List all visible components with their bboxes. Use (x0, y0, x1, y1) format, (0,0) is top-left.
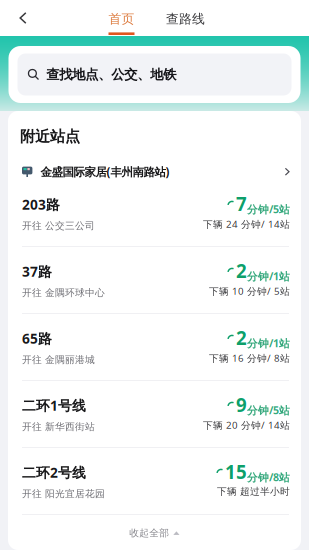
button[interactable]: 203路 (8, 180, 301, 246)
staticText: 下辆 10 分钟/ 5站 (209, 284, 290, 298)
button[interactable]: 首页 (102, 0, 140, 36)
staticText: 203路 (22, 195, 60, 214)
staticText: 7 (236, 191, 247, 216)
staticText: 9 (236, 392, 247, 417)
staticText: 下辆 24 分钟/ 14站 (203, 217, 290, 231)
staticText: 分钟/1站 (247, 269, 290, 283)
staticText: 下辆 16 分钟/ 8站 (209, 351, 290, 365)
staticText: 分钟/8站 (247, 470, 290, 484)
button[interactable]: 37路 (8, 247, 301, 313)
staticText: 查找地点、公交、地铁 (46, 66, 176, 83)
button[interactable]: 收起全部 (8, 515, 301, 550)
button[interactable]: Back (0, 0, 46, 36)
staticText: 二环1号线 (22, 396, 86, 415)
button[interactable]: 金盛国际家居(丰州南路站) (8, 152, 301, 180)
staticText: 2 (236, 258, 247, 283)
staticText: 开往 阳光宜居花园 (22, 488, 105, 500)
staticText: 下辆 20 分钟/ 14站 (203, 418, 290, 432)
staticText: 附近站点 (20, 127, 80, 146)
staticText: 金盛国际家居(丰州南路站) (40, 164, 169, 180)
staticText: 首页 (108, 11, 134, 27)
button[interactable]: 查找地点、公交、地铁 (17, 53, 291, 95)
button[interactable]: 二环2号线 (8, 448, 301, 514)
staticText: 分钟/1站 (247, 336, 290, 350)
staticText: 查路线 (166, 11, 205, 27)
staticText: 分钟/5站 (247, 403, 290, 417)
button[interactable]: 65路 (8, 314, 301, 380)
staticText: 开往 新华西街站 (22, 421, 95, 433)
button[interactable]: 查路线 (164, 0, 206, 36)
staticText: 开往 金隅环球中心 (22, 287, 105, 299)
staticText: 下辆 超过半小时 (217, 485, 290, 498)
staticText: 二环2号线 (22, 463, 86, 482)
staticText: 开往 金隅丽港城 (22, 354, 95, 366)
staticText: 收起全部 (129, 527, 169, 539)
button[interactable]: 二环1号线 (8, 381, 301, 447)
staticText: 2 (236, 325, 247, 350)
staticText: 65路 (22, 329, 52, 348)
staticText: 37路 (22, 262, 52, 281)
staticText: 开往 公交三公司 (22, 220, 95, 232)
staticText: 15 (225, 459, 247, 484)
staticText: 分钟/5站 (247, 202, 290, 216)
